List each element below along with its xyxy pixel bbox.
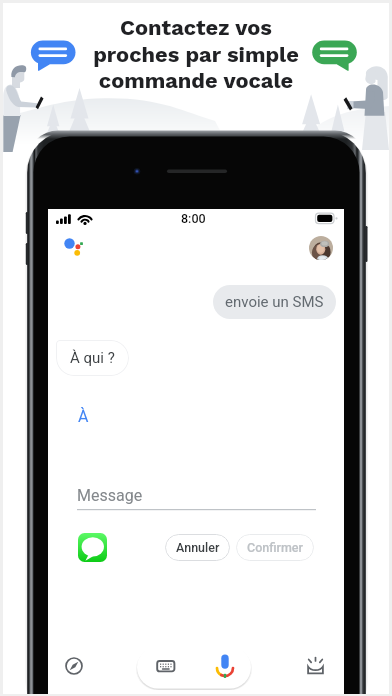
staticText: envoie un SMS xyxy=(225,293,324,311)
button[interactable]: Annuler xyxy=(165,534,230,561)
staticText: Annuler xyxy=(176,540,220,555)
button[interactable]: Profile picture xyxy=(309,236,333,260)
staticText: Contactez vos proches par simple command… xyxy=(93,15,299,93)
button[interactable]: Voice input xyxy=(194,646,251,689)
staticText: À xyxy=(78,407,89,426)
button[interactable]: Keyboard input xyxy=(137,646,194,689)
button[interactable]: À qui ? xyxy=(56,340,129,376)
staticText: Message xyxy=(77,486,143,505)
staticText: 8:00 xyxy=(181,211,206,226)
staticText: Confirmer xyxy=(247,540,303,555)
button[interactable]: Confirmer xyxy=(236,534,314,561)
button[interactable]: Updates xyxy=(298,648,334,684)
staticText: À qui ? xyxy=(70,349,115,367)
button[interactable]: Explore xyxy=(56,648,92,684)
button[interactable]: envoie un SMS xyxy=(213,285,336,319)
